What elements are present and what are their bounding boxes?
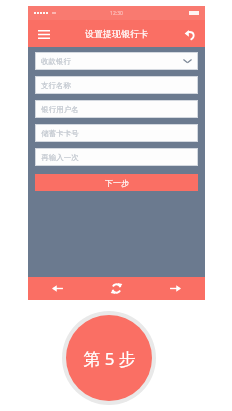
button[interactable]: 收款银行 — [35, 52, 198, 70]
staticText: 下一步 — [105, 178, 129, 188]
button[interactable]: Back — [180, 25, 198, 43]
button[interactable]: Menu — [35, 25, 53, 43]
staticText: 12:30 — [110, 10, 123, 17]
staticText: 银行用户名 — [41, 105, 79, 114]
staticText: 支行名称 — [41, 81, 71, 90]
button[interactable]: 第 5 步 — [62, 311, 156, 405]
staticText: 设置提现银行卡 — [85, 28, 148, 39]
staticText: 再输入一次 — [41, 153, 79, 162]
button[interactable]: 银行用户名 — [35, 100, 198, 118]
staticText: 收款银行 — [41, 57, 71, 66]
button[interactable]: 再输入一次 — [35, 148, 198, 166]
button[interactable]: Forward — [146, 277, 205, 300]
button[interactable]: 支行名称 — [35, 76, 198, 94]
staticText: 储蓄卡卡号 — [41, 129, 79, 138]
button[interactable]: Refresh — [87, 277, 146, 300]
button[interactable]: 下一步 — [35, 174, 198, 191]
button[interactable]: 储蓄卡卡号 — [35, 124, 198, 142]
button[interactable]: Back — [28, 277, 87, 300]
staticText: 第 5 步 — [83, 347, 136, 370]
